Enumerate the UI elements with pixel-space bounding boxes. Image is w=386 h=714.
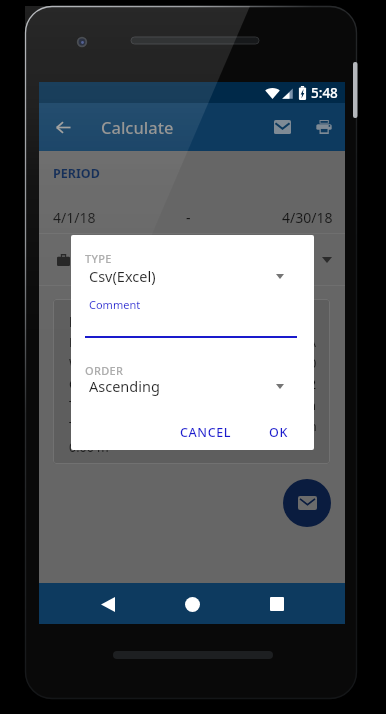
staticText: 160.00 h xyxy=(266,397,317,414)
staticText: Ascending xyxy=(89,376,160,396)
button[interactable]: OK xyxy=(261,417,296,448)
staticText: 0.00 h xyxy=(281,418,317,435)
staticText: Off day xyxy=(69,376,112,393)
staticText: Project A xyxy=(264,334,317,351)
staticText: 5:48 xyxy=(311,84,338,102)
staticText: Work day xyxy=(69,355,125,372)
button[interactable]: 4/1/18 xyxy=(53,208,333,227)
button[interactable]: Back xyxy=(88,584,128,624)
staticText: PERIOD xyxy=(53,165,100,182)
staticText: 0.00 m xyxy=(69,439,109,456)
staticText: Csv(Excel) xyxy=(89,266,156,286)
staticText: OK xyxy=(269,424,288,441)
button[interactable]: Print xyxy=(303,103,344,151)
button[interactable]: Home xyxy=(172,584,212,624)
button[interactable] xyxy=(57,234,332,285)
staticText: Total work xyxy=(69,397,130,414)
button[interactable]: Send email xyxy=(283,479,331,527)
staticText: 4/30/18 xyxy=(282,208,333,227)
button[interactable]: Csv(Excel) xyxy=(89,266,284,286)
staticText: Name xyxy=(69,313,110,331)
staticText: CANCEL xyxy=(180,424,232,441)
button[interactable]: Recent apps xyxy=(257,584,297,624)
staticText: Comment xyxy=(89,297,141,312)
staticText: 4/1/18 xyxy=(53,208,96,227)
staticText: TYPE xyxy=(85,251,112,266)
button[interactable]: Ascending xyxy=(89,376,284,396)
staticText: ORDER xyxy=(85,363,124,378)
staticText: 2 xyxy=(309,376,317,393)
button[interactable]: Email xyxy=(262,103,303,151)
staticText: 20 xyxy=(302,355,317,372)
staticText: Project xyxy=(69,334,110,351)
button[interactable]: Navigate up xyxy=(39,103,88,151)
staticText: - xyxy=(186,208,191,227)
staticText: Total over xyxy=(69,418,127,435)
staticText: Calculate xyxy=(101,116,174,138)
button[interactable]: CANCEL xyxy=(172,417,240,448)
button[interactable]: Name xyxy=(53,299,330,464)
